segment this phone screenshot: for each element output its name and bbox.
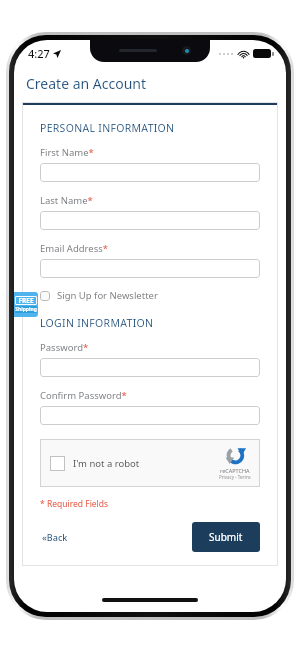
staticText: Email Address* (40, 242, 109, 255)
staticText: Privacy - Terms (219, 474, 251, 480)
button[interactable]: Text input (40, 358, 260, 377)
button[interactable]: Text input (40, 211, 260, 230)
button[interactable]: I'm not a robot checkbox (40, 439, 260, 487)
staticText: LOGIN INFORMATION (40, 316, 154, 330)
staticText: Submit (209, 530, 243, 544)
staticText: I'm not a robot (73, 457, 140, 470)
button[interactable]: Text input (40, 163, 260, 182)
staticText: reCAPTCHA (220, 467, 250, 474)
other: I'm not a robot checkbox (50, 456, 65, 471)
staticText: Password* (40, 341, 89, 354)
staticText: «Back (42, 531, 68, 543)
staticText: Shipping (15, 306, 37, 313)
button[interactable]: Sign Up for Newsletter (40, 289, 158, 302)
staticText: FREE (18, 296, 34, 305)
staticText: 4:27 (28, 46, 50, 61)
staticText: Last Name* (40, 194, 93, 207)
staticText: PERSONAL INFORMATION (40, 121, 175, 135)
button[interactable]: Free Shipping (14, 292, 38, 317)
button[interactable]: Text input (40, 259, 260, 278)
staticText: Create an Account (26, 74, 147, 93)
staticText: First Name* (40, 146, 94, 159)
button[interactable]: «Back (40, 527, 70, 547)
button[interactable]: Submit (192, 522, 260, 552)
staticText: * Required Fields (40, 498, 109, 510)
button[interactable]: Text input (40, 406, 260, 425)
staticText: Confirm Password* (40, 389, 127, 402)
staticText: Sign Up for Newsletter (57, 289, 158, 302)
